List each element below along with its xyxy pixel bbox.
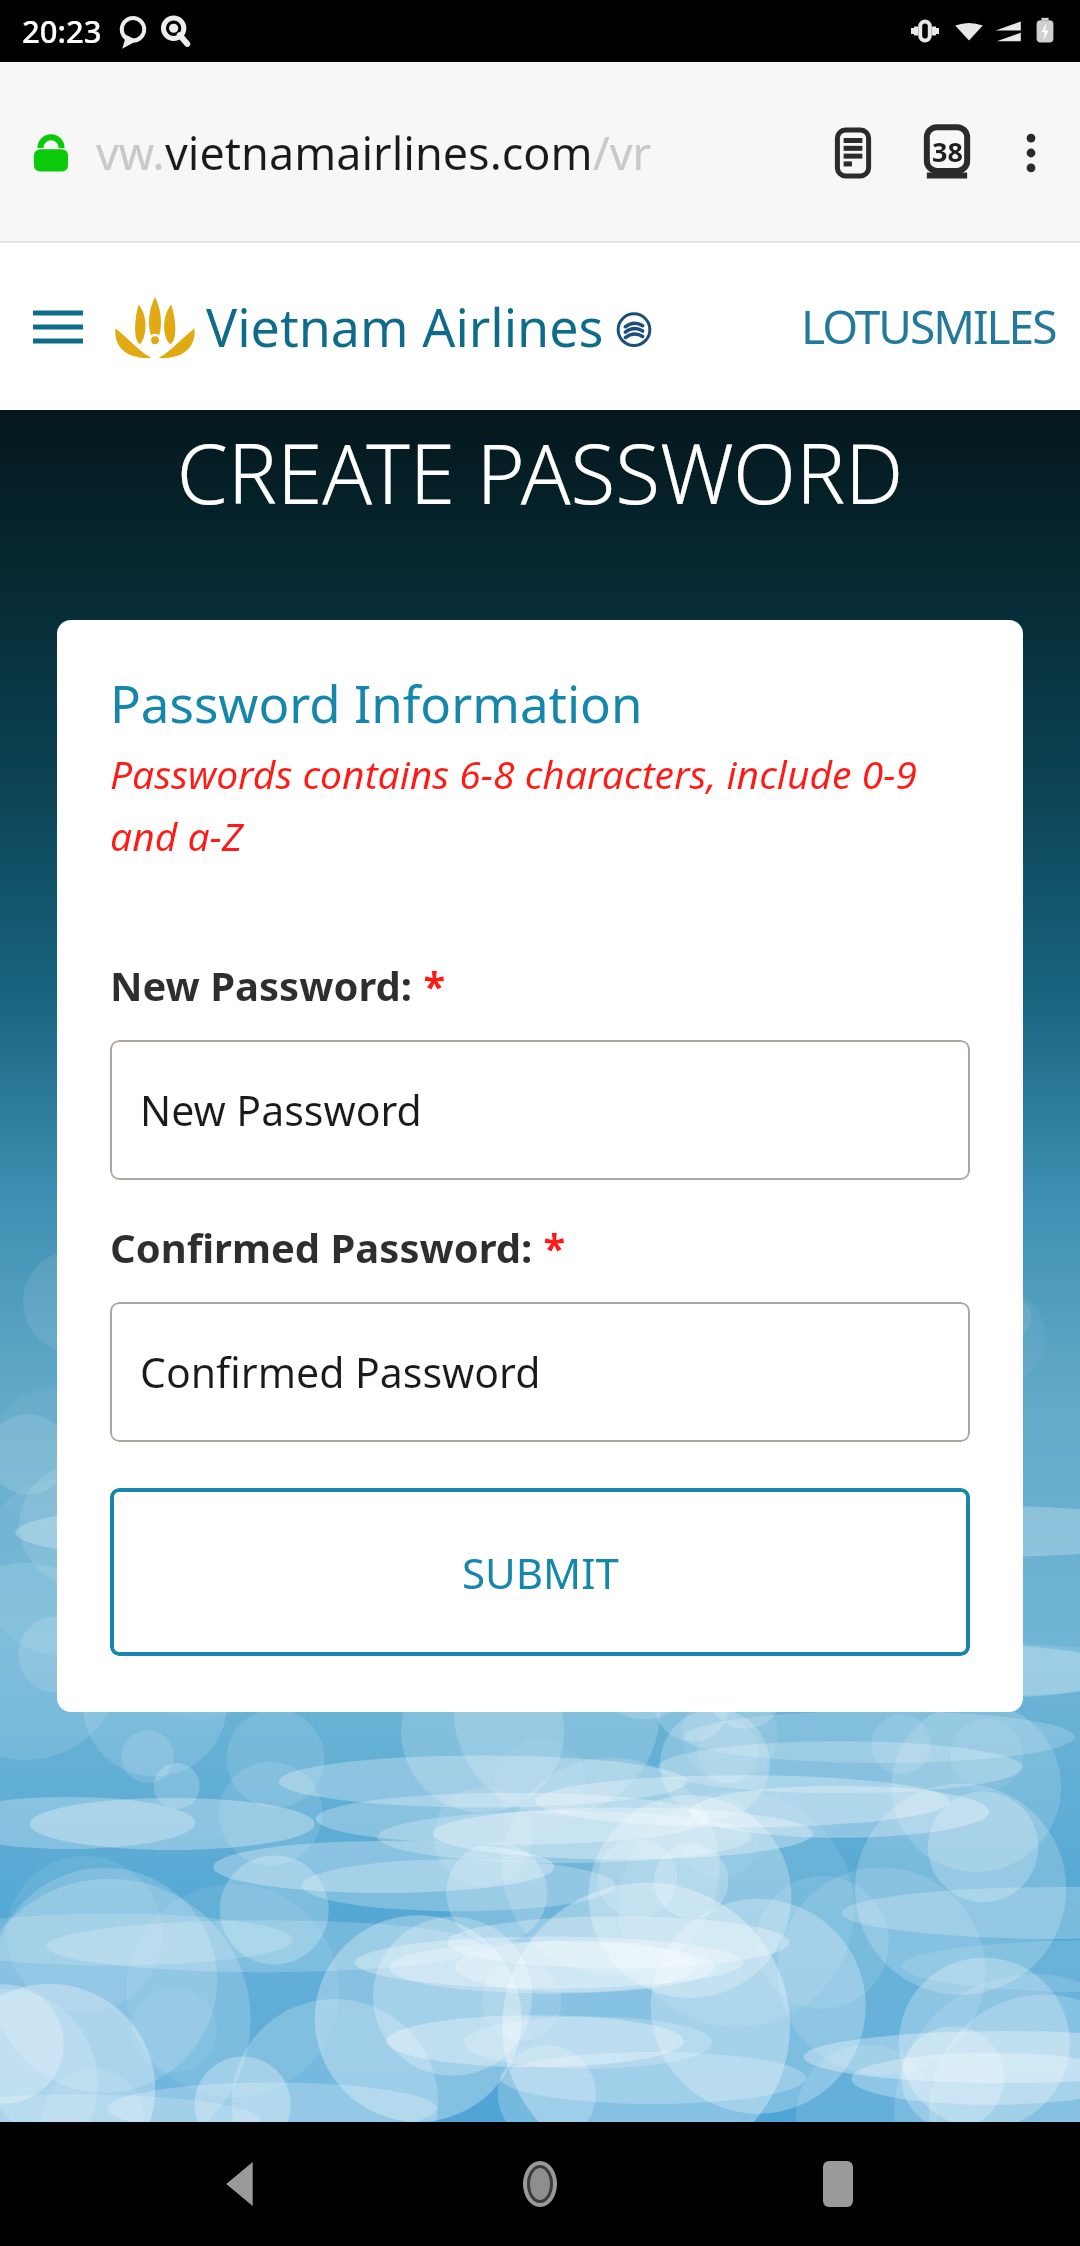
staticText: /vr	[593, 122, 652, 183]
staticText: Confirmed Password	[140, 1344, 541, 1400]
staticText: 20:23	[22, 10, 102, 52]
staticText: New Password	[140, 1082, 422, 1138]
staticText: New Password:	[110, 958, 413, 1012]
other: Secure connection	[28, 130, 74, 176]
staticText: 38	[932, 133, 963, 170]
staticText: vietnamairlines.com	[165, 122, 593, 183]
staticText: Vietnam Airlines	[206, 291, 604, 362]
button[interactable]: New Password	[110, 1040, 970, 1180]
staticText: Passwords contains 6-8 characters, inclu…	[110, 747, 970, 862]
staticText: Password Information	[110, 668, 643, 737]
button[interactable]: SUBMIT	[110, 1488, 970, 1656]
staticText: *	[533, 1220, 566, 1274]
button[interactable]: Confirmed Password	[110, 1302, 970, 1442]
button[interactable]: More options	[1000, 122, 1062, 184]
staticText: vw.	[96, 122, 165, 183]
button[interactable]: Reader mode	[820, 120, 886, 186]
staticText: CREATE PASSWORD	[0, 416, 1080, 528]
staticText: SUBMIT	[462, 1544, 619, 1601]
button[interactable]: LOTUSMILES	[801, 295, 1056, 358]
button[interactable]: Home	[485, 2129, 595, 2239]
button[interactable]: Back	[188, 2129, 298, 2239]
staticText: *	[413, 958, 446, 1012]
button[interactable]: Menu	[26, 295, 90, 359]
staticText: Confirmed Password:	[110, 1220, 533, 1274]
button[interactable]: Recent apps	[783, 2129, 893, 2239]
button[interactable]: Tabs, 38 open	[914, 120, 980, 186]
